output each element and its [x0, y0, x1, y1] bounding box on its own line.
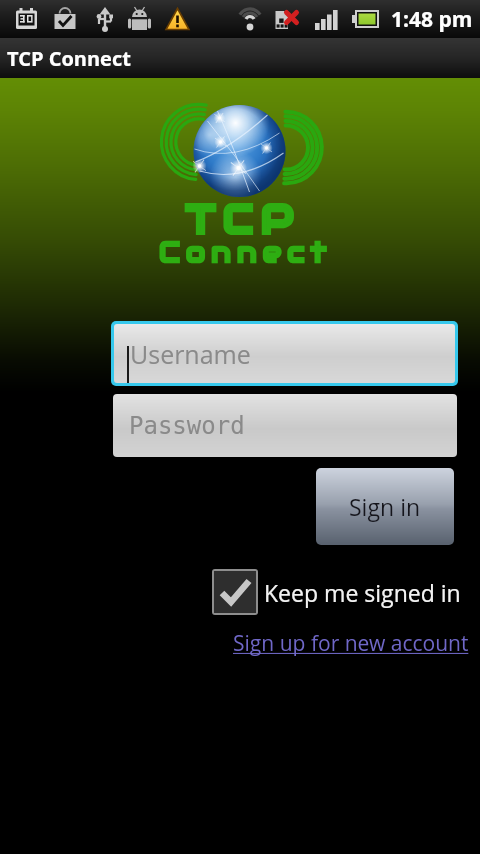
staticText: Sign up for new account — [233, 629, 469, 658]
staticText: Connect — [159, 234, 333, 270]
button[interactable]: Sign up for new account — [233, 629, 469, 658]
staticText: 1:48 pm — [391, 5, 473, 34]
staticText: TCP — [186, 193, 302, 244]
staticText: Password — [129, 412, 245, 440]
button[interactable]: Sign in — [316, 468, 454, 545]
staticText: TCP — [186, 193, 302, 244]
staticText: Sign in — [349, 491, 421, 522]
button[interactable]: Keep me signed in — [212, 569, 461, 615]
staticText: TCP Connect — [7, 45, 131, 72]
staticText: Keep me signed in — [264, 577, 461, 608]
staticText: Username — [130, 337, 251, 371]
button[interactable]: Username — [111, 321, 458, 386]
button[interactable]: Password — [113, 394, 457, 457]
staticText: Connect — [159, 234, 333, 270]
